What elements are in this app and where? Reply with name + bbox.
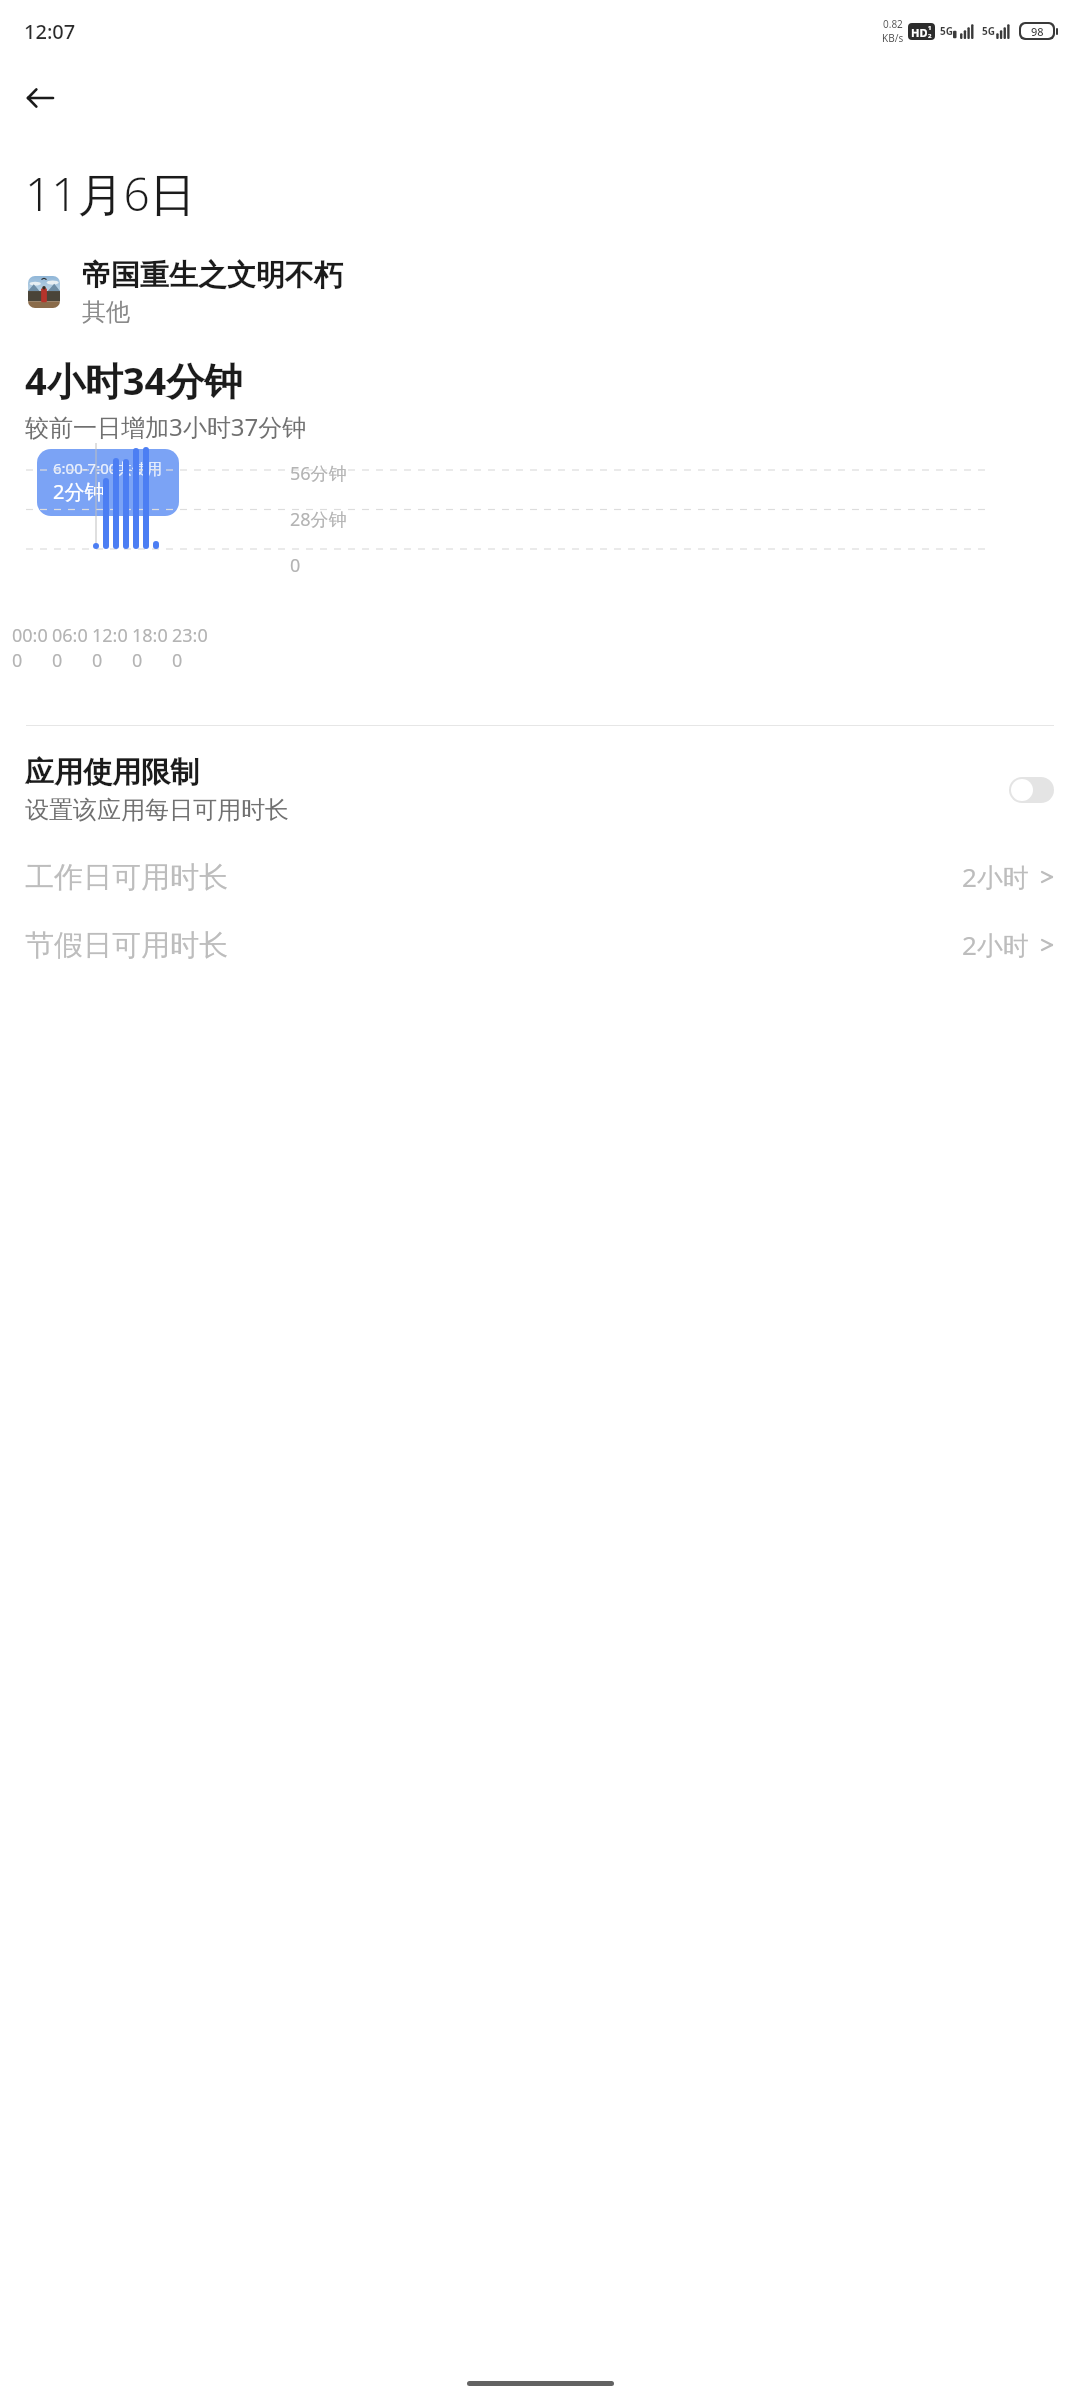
staticText: 0 (290, 553, 301, 578)
button[interactable]: 节假日可用时长 (0, 911, 1080, 979)
staticText: 2分钟 (53, 478, 105, 505)
button[interactable]: 应用使用限制 (0, 754, 1080, 825)
staticText: 28分钟 (290, 507, 347, 532)
staticText: 工作日可用时长 (25, 859, 962, 896)
staticText: 较前一日增加3小时37分钟 (25, 410, 307, 443)
button[interactable]: 应用使用限制开关 (1009, 777, 1054, 803)
staticText: 节假日可用时长 (25, 927, 962, 964)
button[interactable]: 工作日可用时长 (0, 843, 1080, 911)
staticText: 00:00 (12, 623, 52, 673)
staticText: 98 (1031, 24, 1044, 38)
staticText: 2 (928, 32, 932, 40)
staticText: 12:00 (92, 623, 132, 673)
staticText: 12:07 (24, 18, 76, 45)
staticText: 5G (982, 24, 995, 38)
button[interactable]: 帝国重生之文明不朽 (28, 257, 1080, 327)
staticText: 11月6日 (25, 162, 196, 225)
staticText: 其他 (82, 297, 130, 327)
staticText: 应用使用限制 (25, 754, 199, 791)
staticText: 设置该应用每日可用时长 (25, 795, 289, 825)
staticText: 06:00 (52, 623, 92, 673)
staticText: 2小时 (962, 927, 1029, 963)
staticText: 6:00-7:00共使用 (53, 458, 163, 478)
staticText: 56分钟 (290, 461, 347, 486)
staticText: 18:00 (132, 623, 172, 673)
button[interactable]: Back (12, 70, 68, 126)
staticText: 0.82 (883, 17, 903, 31)
staticText: 1 (928, 24, 932, 32)
staticText: KB/s (882, 31, 904, 45)
staticText: 4小时34分钟 (25, 354, 243, 406)
staticText: 23:00 (172, 623, 212, 673)
staticText: 2小时 (962, 859, 1029, 895)
staticText: 帝国重生之文明不朽 (82, 257, 343, 294)
staticText: HD (911, 25, 928, 40)
staticText: 5G (940, 24, 953, 38)
